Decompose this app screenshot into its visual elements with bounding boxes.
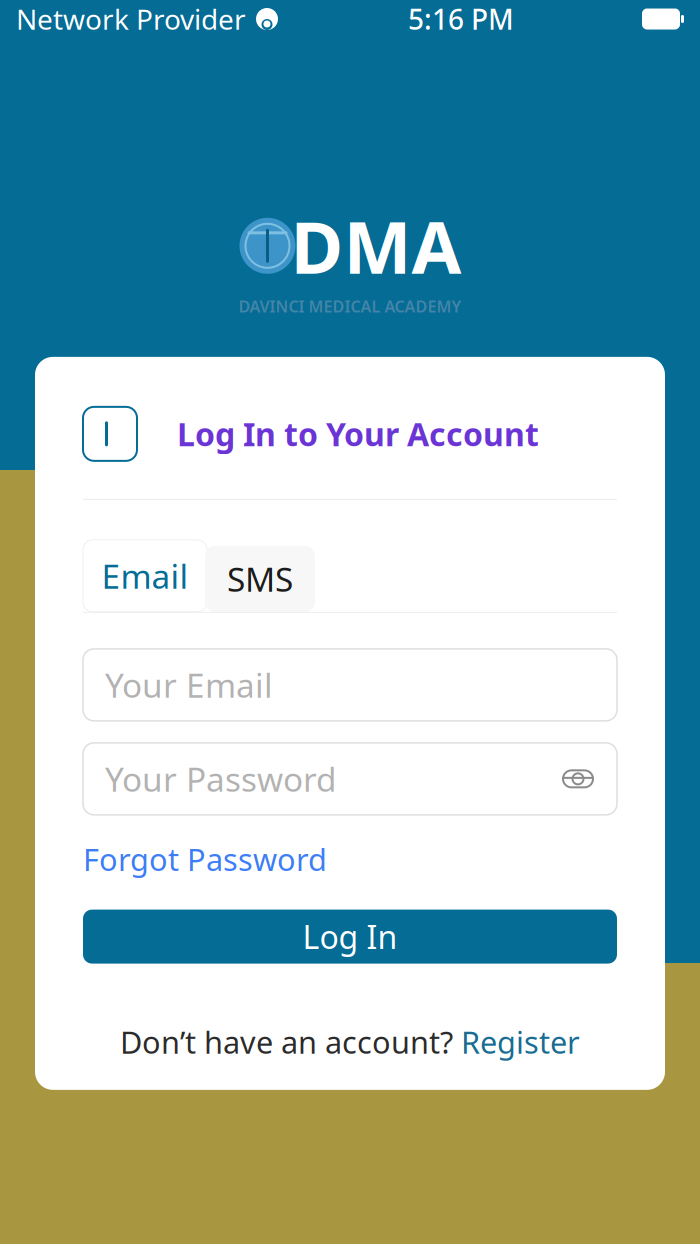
staticText: SMS bbox=[227, 557, 293, 601]
staticText: Log In to Your Account bbox=[177, 413, 539, 455]
staticText: Forgot Password bbox=[83, 839, 327, 880]
staticText: Log In bbox=[302, 915, 397, 958]
button[interactable]: Back bbox=[83, 407, 137, 461]
staticText: DAVINCI MEDICAL ACADEMY bbox=[238, 296, 461, 317]
staticText: Email bbox=[101, 554, 188, 598]
staticText: Don’t have an account? bbox=[120, 1022, 461, 1062]
button[interactable]: Email bbox=[83, 540, 207, 612]
staticText: Your Password bbox=[105, 757, 337, 801]
staticText: Your Email bbox=[105, 663, 273, 707]
staticText: Register bbox=[461, 1022, 580, 1062]
button[interactable]: Register bbox=[461, 1022, 580, 1062]
button[interactable]: Forgot Password bbox=[83, 839, 327, 880]
staticText: 5:16 PM bbox=[408, 0, 514, 38]
button[interactable]: Show password bbox=[561, 766, 595, 792]
button[interactable]: Log In bbox=[83, 910, 617, 964]
staticText: DMA bbox=[290, 198, 461, 294]
staticText: Network Provider bbox=[16, 0, 246, 38]
button[interactable]: SMS bbox=[205, 546, 315, 612]
